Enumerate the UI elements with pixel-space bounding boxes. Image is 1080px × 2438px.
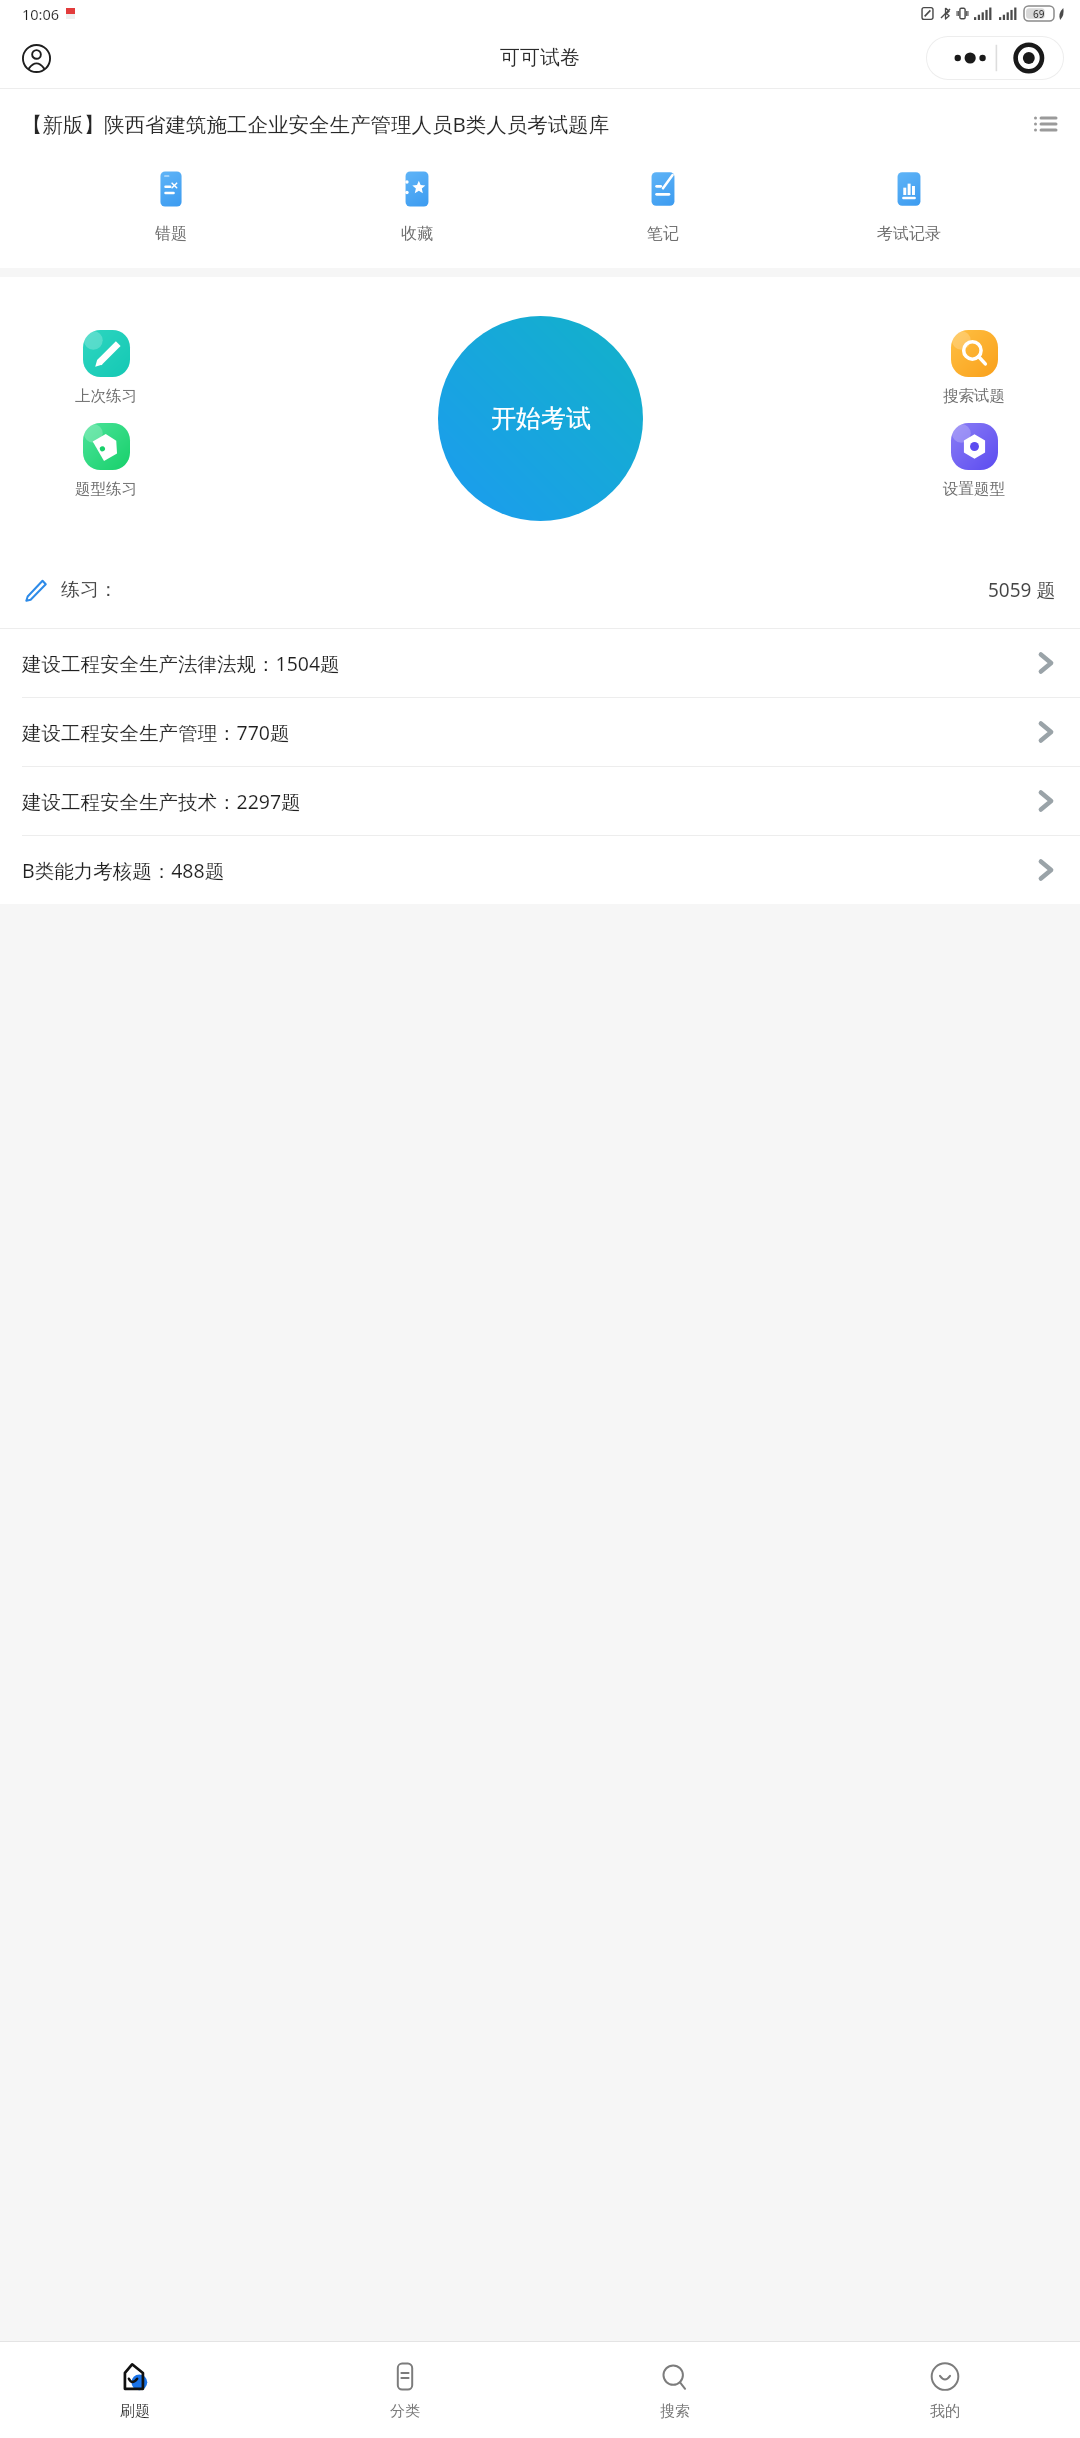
button[interactable]: Menu [926, 36, 1064, 80]
staticText: 考试记录 [877, 224, 941, 244]
button[interactable]: Profile [12, 34, 60, 82]
button[interactable]: 建设工程安全生产法律法规：1504题 [0, 629, 1080, 697]
staticText: 上次练习 [75, 386, 137, 406]
button[interactable]: 建设工程安全生产技术：2297题 [0, 767, 1080, 835]
staticText: 设置题型 [943, 479, 1005, 499]
staticText: 笔记 [647, 224, 679, 244]
staticText: 我的 [930, 2402, 960, 2421]
button[interactable]: 题型练习 [46, 423, 166, 499]
staticText: 建设工程安全生产管理：770题 [22, 719, 1038, 746]
staticText: 69 [1033, 7, 1045, 21]
staticText: 刷题 [120, 2402, 150, 2421]
button[interactable]: 【新版】陕西省建筑施工企业安全生产管理人员B类人员考试题库 [22, 107, 1062, 141]
staticText: 建设工程安全生产技术：2297题 [22, 788, 1038, 815]
staticText: B类能力考核题：488题 [22, 857, 1038, 884]
button[interactable]: 设置题型 [914, 423, 1034, 499]
button[interactable]: 上次练习 [46, 330, 166, 406]
staticText: 题型练习 [75, 479, 137, 499]
button[interactable]: 笔记 [588, 165, 738, 246]
button[interactable]: B类能力考核题：488题 [0, 836, 1080, 904]
staticText: 搜索试题 [943, 386, 1005, 406]
staticText: 分类 [390, 2402, 420, 2421]
staticText: 搜索 [660, 2402, 690, 2421]
staticText: 收藏 [401, 224, 433, 244]
button[interactable]: 收藏 [342, 165, 492, 246]
staticText: 练习： [61, 578, 118, 602]
button[interactable]: 分类 [270, 2342, 540, 2438]
staticText: 建设工程安全生产法律法规：1504题 [22, 650, 1038, 677]
staticText: 10:06 [22, 4, 60, 24]
staticText: 5059 题 [988, 577, 1056, 603]
button[interactable]: Switch bank [1028, 107, 1062, 141]
staticText: 可可试卷 [500, 45, 580, 70]
button[interactable]: 我的 [810, 2342, 1080, 2438]
staticText: 【新版】陕西省建筑施工企业安全生产管理人员B类人员考试题库 [22, 110, 1018, 138]
button[interactable]: 搜索 [540, 2342, 810, 2438]
staticText: 开始考试 [491, 403, 591, 434]
button[interactable]: 错题 [96, 165, 246, 246]
staticText: 错题 [155, 224, 187, 244]
button[interactable]: 搜索试题 [914, 330, 1034, 406]
button[interactable]: 考试记录 [834, 165, 984, 246]
button[interactable]: 建设工程安全生产管理：770题 [0, 698, 1080, 766]
button[interactable]: 刷题 [0, 2342, 270, 2438]
button[interactable]: 开始考试 [438, 316, 643, 521]
